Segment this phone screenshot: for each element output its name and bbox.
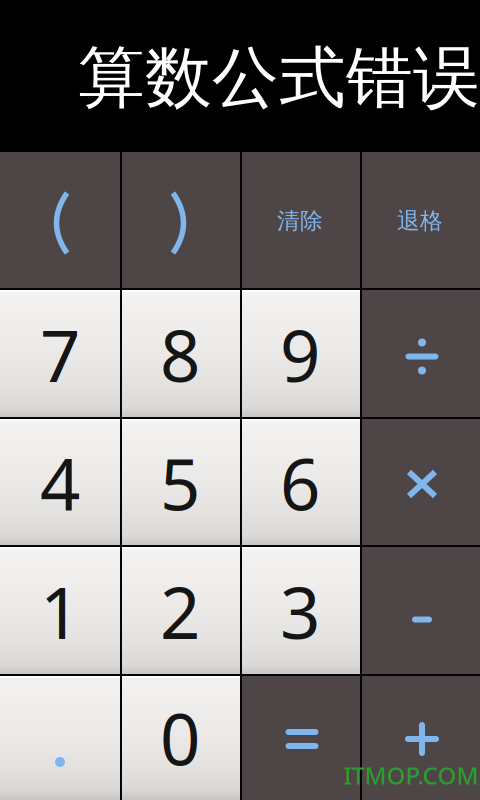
button[interactable]: Divide	[360, 290, 480, 419]
staticText: 退格	[397, 207, 443, 235]
staticText: 算数公式错误	[78, 37, 480, 119]
staticText: 2	[160, 565, 200, 658]
staticText: 7	[40, 308, 80, 401]
staticText: 清除	[277, 207, 323, 235]
button[interactable]: Minus	[360, 547, 480, 676]
button[interactable]	[240, 419, 360, 547]
staticText: 3	[280, 565, 320, 658]
staticText: ITMOP.COM	[343, 759, 478, 791]
button[interactable]	[240, 152, 360, 290]
button[interactable]: Decimal point	[0, 676, 120, 800]
staticText: 8	[160, 308, 200, 401]
staticText: 1	[40, 565, 80, 658]
button[interactable]	[120, 547, 240, 676]
button[interactable]: Plus	[360, 676, 480, 800]
button[interactable]: Multiply	[360, 419, 480, 547]
button[interactable]	[120, 676, 240, 800]
button[interactable]: Left parenthesis	[0, 152, 120, 290]
button[interactable]	[240, 290, 360, 419]
staticText: 6	[280, 436, 320, 530]
button[interactable]: Equals	[240, 676, 360, 800]
button[interactable]	[240, 547, 360, 676]
staticText: 5	[160, 436, 200, 530]
button[interactable]	[0, 547, 120, 676]
button[interactable]: Right parenthesis	[120, 152, 240, 290]
button[interactable]	[0, 290, 120, 419]
button[interactable]	[360, 152, 480, 290]
staticText: 9	[280, 308, 320, 401]
button[interactable]	[0, 419, 120, 547]
staticText: 0	[160, 691, 200, 785]
button[interactable]	[120, 419, 240, 547]
staticText: 4	[40, 436, 80, 530]
button[interactable]	[120, 290, 240, 419]
